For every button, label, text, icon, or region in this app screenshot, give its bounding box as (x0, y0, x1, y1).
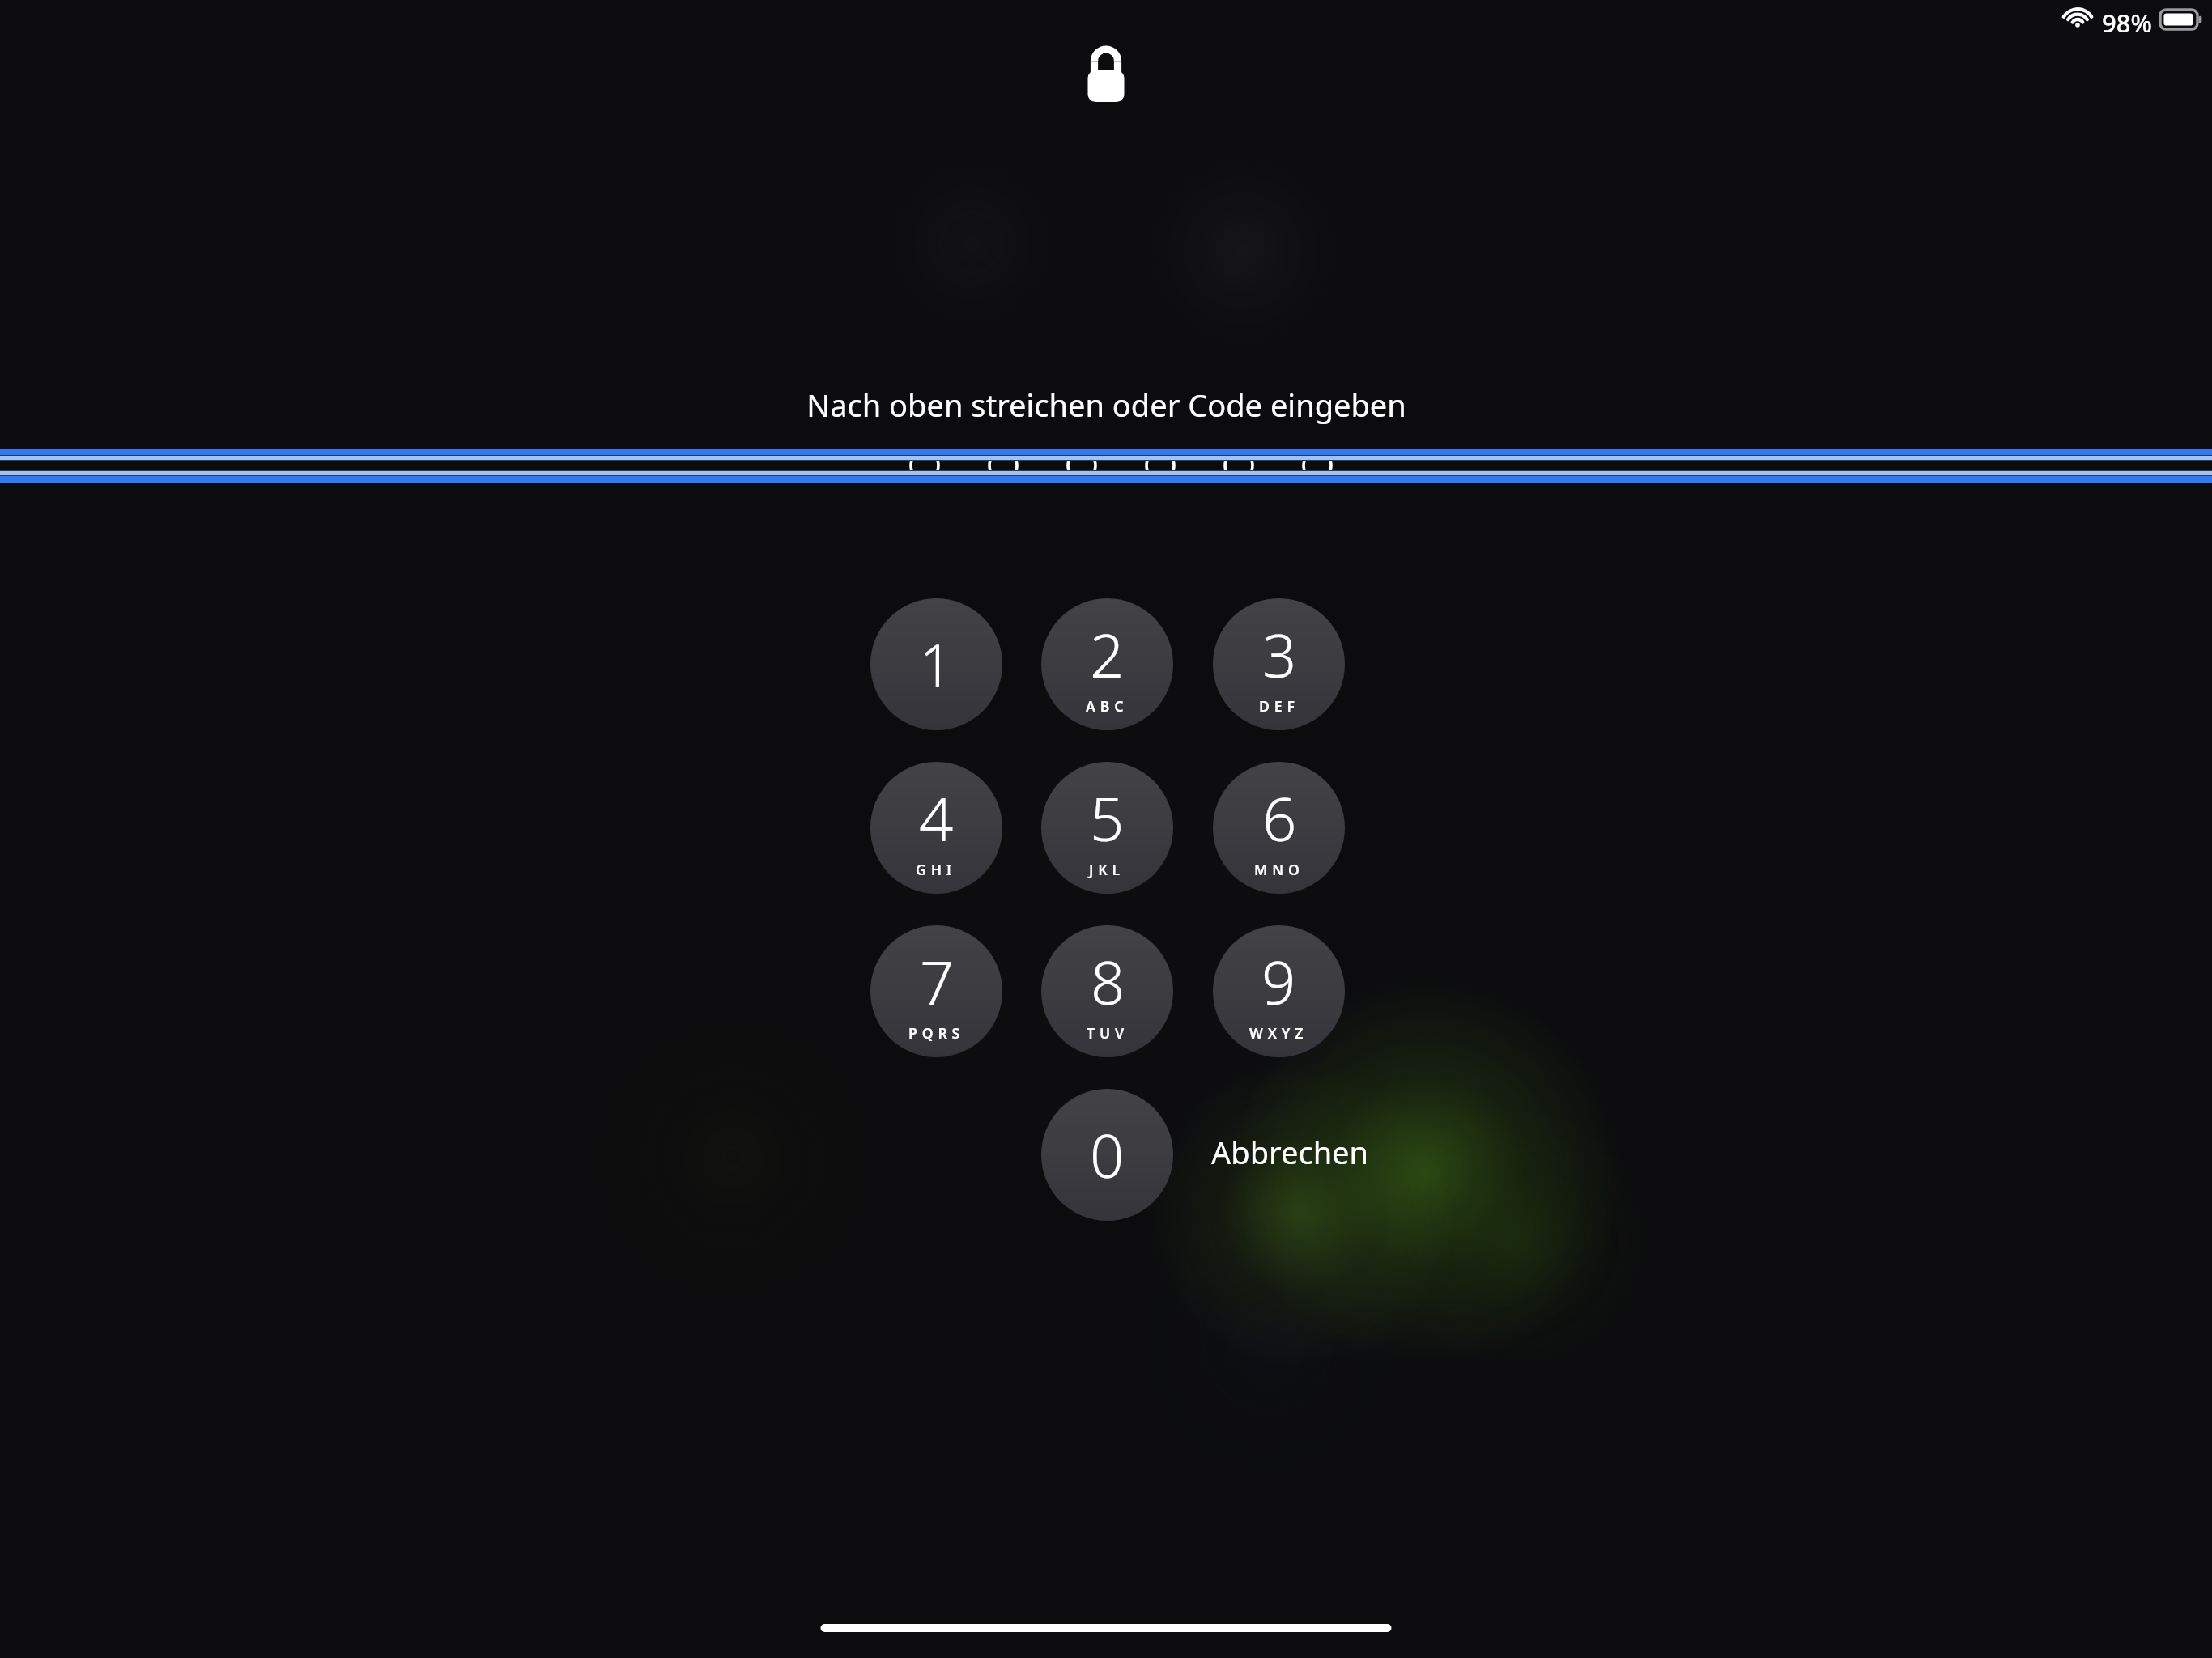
button[interactable]: 1 (870, 598, 1002, 730)
staticText: PQRS (908, 1023, 965, 1043)
staticText: TUV (1087, 1023, 1129, 1043)
button[interactable]: 6 (1213, 762, 1345, 894)
button[interactable]: 5 (1041, 762, 1173, 894)
button[interactable]: 3 (1213, 598, 1345, 730)
button[interactable]: Code eingeben (0, 0, 2212, 1658)
staticText: 8 (1091, 941, 1125, 1022)
staticText: DEF (1259, 696, 1300, 716)
button[interactable]: 7 (870, 925, 1002, 1057)
staticText: ABC (1086, 696, 1129, 716)
button[interactable]: 8 (1041, 925, 1173, 1057)
staticText: 7 (920, 941, 955, 1022)
staticText: Abbrechen (1211, 1131, 1369, 1173)
button[interactable]: 9 (1213, 925, 1345, 1057)
staticText: 1 (919, 623, 954, 705)
staticText: 98% (2102, 6, 2152, 40)
staticText: 2 (1090, 614, 1125, 695)
staticText: MNO (1254, 860, 1304, 879)
button[interactable]: 4 (870, 762, 1002, 894)
staticText: Nach oben streichen oder Code eingeben (806, 384, 1406, 426)
button[interactable]: 0 (1041, 1089, 1173, 1221)
staticText: 9 (1261, 941, 1296, 1022)
staticText: 3 (1262, 614, 1297, 695)
staticText: JKL (1089, 860, 1125, 879)
staticText: WXYZ (1249, 1023, 1308, 1043)
button[interactable]: 2 (1041, 598, 1173, 730)
staticText: 5 (1090, 777, 1125, 859)
staticText: 0 (1090, 1114, 1125, 1196)
staticText: GHI (916, 860, 957, 879)
button[interactable]: Abbrechen (1211, 1131, 1369, 1173)
staticText: 6 (1262, 777, 1297, 859)
staticText: 4 (919, 777, 954, 859)
